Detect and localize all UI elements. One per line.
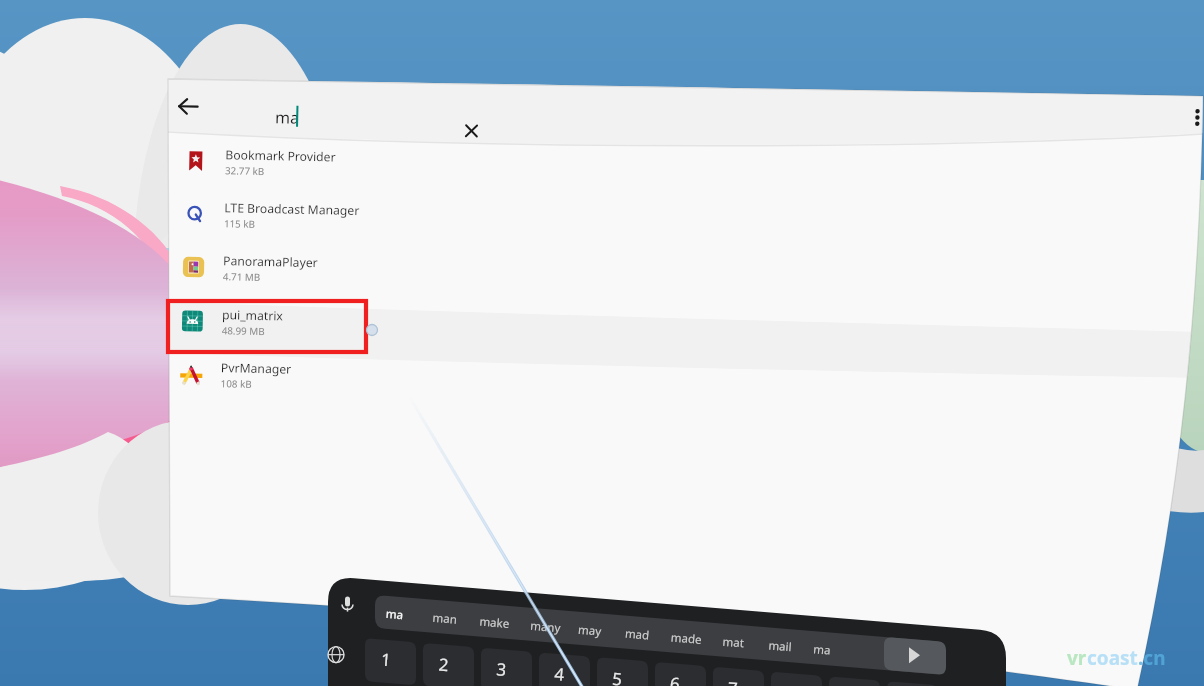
button[interactable]: 2	[415, 643, 469, 686]
button[interactable]: 4	[531, 652, 585, 686]
button[interactable]: made	[661, 623, 710, 659]
button[interactable]: Back	[174, 92, 203, 121]
staticText: many	[530, 618, 562, 636]
button[interactable]: LTE Broadcast Manager	[165, 187, 1204, 261]
button[interactable]: 7	[704, 666, 758, 686]
staticText: 115 kB	[224, 217, 255, 231]
staticText: mail	[768, 637, 793, 655]
button[interactable]: 9	[820, 676, 874, 686]
button[interactable]: Bookmark Provider	[166, 134, 1204, 208]
staticText: ma	[275, 106, 299, 129]
button[interactable]: PvrManager	[161, 347, 1204, 421]
button[interactable]: 3	[473, 647, 527, 686]
staticText: 7	[727, 676, 739, 686]
staticText: may	[577, 622, 603, 640]
button[interactable]: 8	[762, 671, 816, 686]
button[interactable]: mail	[759, 631, 807, 668]
staticText: made	[670, 629, 702, 648]
staticText: LTE Broadcast Manager	[224, 199, 360, 219]
staticText: 4	[553, 662, 565, 686]
staticText: 4.71 MB	[223, 270, 261, 284]
staticText: 1	[380, 648, 392, 671]
button[interactable]: Clear search	[459, 118, 484, 144]
button[interactable]: Switch language	[317, 645, 343, 671]
staticText: make	[479, 614, 510, 632]
staticText: coast	[1087, 645, 1138, 671]
staticText: 3	[496, 657, 508, 681]
button[interactable]: may	[569, 615, 617, 652]
button[interactable]: mat	[713, 627, 762, 664]
button[interactable]: 6	[646, 662, 701, 686]
button[interactable]: mad	[615, 619, 664, 656]
button[interactable]: 0	[877, 681, 932, 686]
staticText: mad	[624, 626, 650, 644]
staticText: PanoramaPlayer	[223, 252, 318, 271]
button[interactable]: many	[521, 611, 569, 648]
staticText: man	[432, 610, 458, 628]
staticText: 108 kB	[220, 377, 252, 391]
staticText: mat	[722, 634, 745, 651]
staticText: PvrManager	[221, 359, 292, 378]
button[interactable]: ma	[376, 599, 425, 636]
button[interactable]: Voice input	[333, 596, 359, 621]
staticText: ma	[385, 606, 404, 623]
staticText: pui_matrix	[222, 306, 283, 324]
staticText: vr	[1067, 645, 1087, 671]
staticText: .cn	[1138, 645, 1166, 671]
staticText: 2	[438, 652, 450, 676]
button[interactable]: make	[470, 607, 518, 644]
staticText: 5	[611, 667, 623, 686]
button[interactable]: man	[423, 603, 472, 640]
staticText: 48.99 MB	[222, 324, 265, 338]
staticText: ma	[813, 641, 832, 659]
staticText: Bookmark Provider	[225, 146, 336, 165]
button[interactable]: More options	[1184, 104, 1204, 131]
button[interactable]: pui_matrix	[162, 294, 1204, 368]
staticText: 32.77 kB	[225, 164, 265, 178]
staticText: 6	[669, 671, 681, 686]
button[interactable]: 1	[357, 638, 412, 685]
button[interactable]: PanoramaPlayer	[163, 240, 1204, 314]
button[interactable]: More suggestions	[879, 637, 943, 675]
button[interactable]: 5	[588, 657, 643, 686]
button[interactable]: ma	[804, 635, 852, 671]
